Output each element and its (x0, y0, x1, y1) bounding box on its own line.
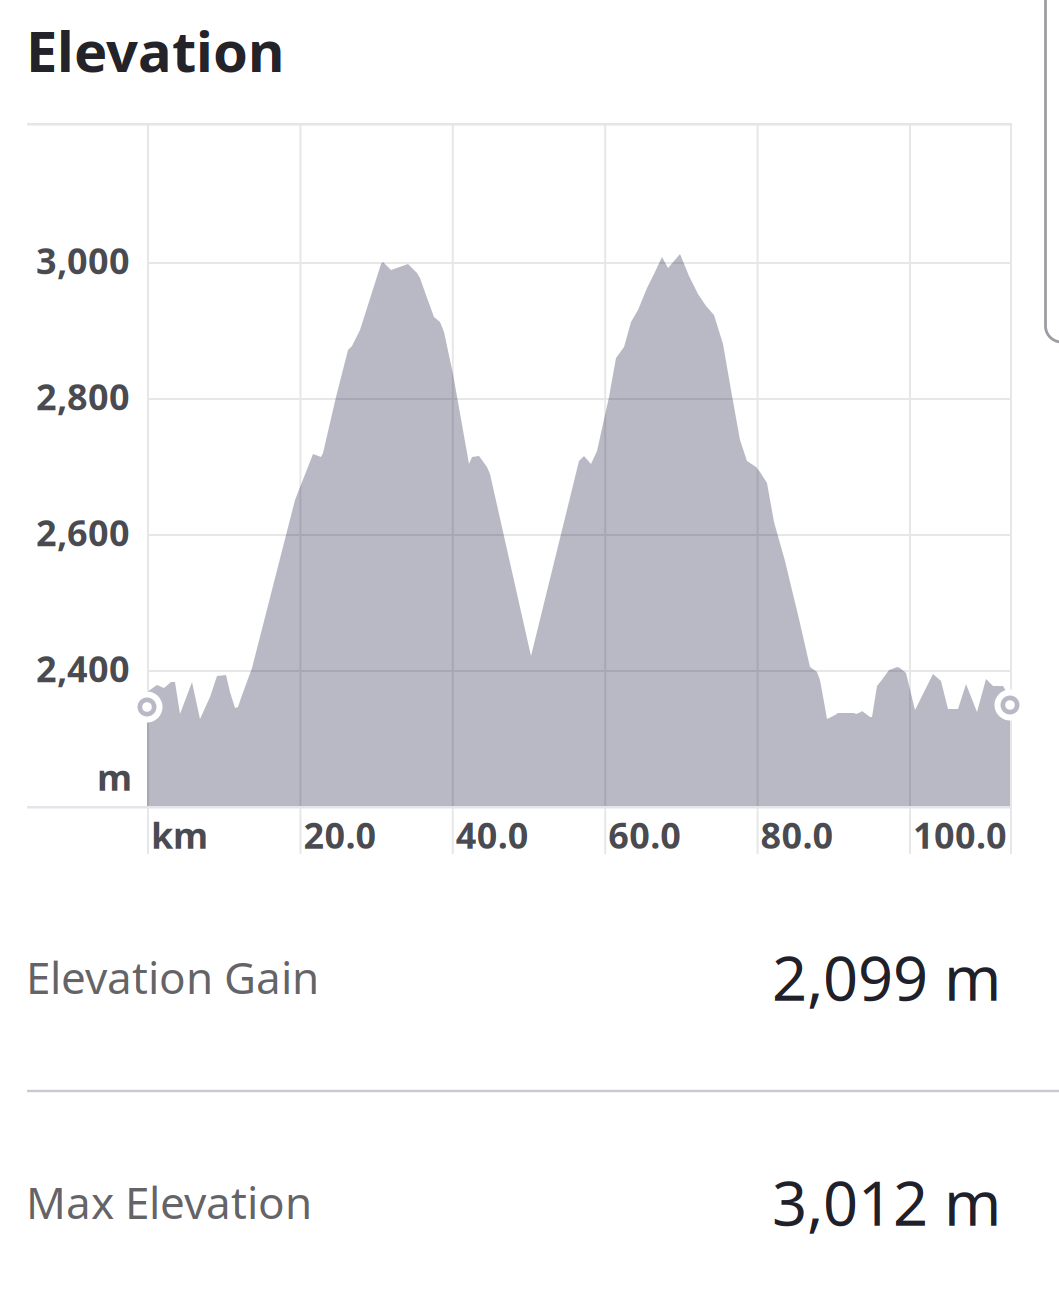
staticText: 3,000 (36, 236, 130, 284)
button[interactable]: Elevation Gain (0, 863, 1059, 1091)
staticText: Elevation (26, 13, 284, 87)
staticText: 2,800 (36, 372, 130, 420)
staticText: m (97, 753, 132, 801)
staticText: 100.0 (913, 811, 1007, 859)
staticText: 20.0 (303, 811, 376, 859)
staticText: 2,099 m (772, 936, 1001, 1018)
staticText: 60.0 (608, 811, 681, 859)
staticText: 80.0 (761, 811, 834, 859)
staticText: 40.0 (456, 811, 529, 859)
staticText: 3,012 m (772, 1161, 1001, 1243)
button[interactable]: Max Elevation (0, 1091, 1059, 1289)
staticText: Elevation Gain (26, 948, 319, 1006)
staticText: 2,400 (36, 644, 130, 692)
staticText: km (151, 811, 208, 859)
staticText: Max Elevation (26, 1173, 312, 1231)
staticText: 2,600 (36, 508, 130, 556)
